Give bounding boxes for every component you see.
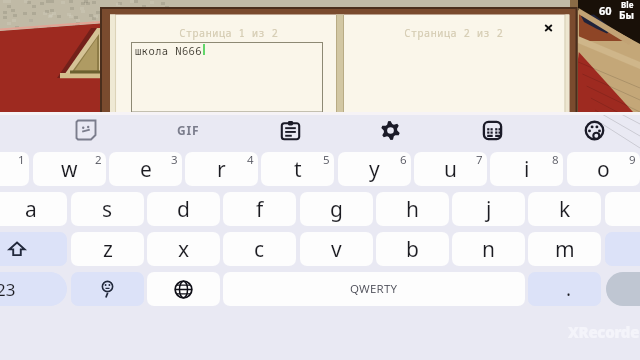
staticText: k [559,195,571,224]
button[interactable]: i [490,152,563,186]
staticText: s [102,195,113,224]
button[interactable]: u [414,152,487,186]
staticText: r [217,155,226,184]
staticText: a [25,195,37,224]
button[interactable]: z [71,232,144,266]
staticText: v [331,235,342,264]
staticText: d [177,195,190,224]
button[interactable]: o [567,152,640,186]
button[interactable]: Change language [147,272,220,306]
staticText: Бы [619,8,635,22]
button[interactable]: Enter [606,272,640,306]
staticText: XRecorder [568,322,640,342]
button[interactable]: t [261,152,334,186]
button[interactable]: j [452,192,525,226]
staticText: ?123 [0,278,16,301]
button[interactable]: x [147,232,220,266]
button[interactable]: h [376,192,449,226]
staticText: школа N666 [135,44,202,58]
staticText: 9 [629,152,636,168]
button[interactable]: Number pad [483,121,502,140]
staticText: h [406,195,419,224]
button[interactable]: Close book [541,21,556,35]
button[interactable]: Symbols [0,272,67,306]
button[interactable]: e [109,152,182,186]
staticText: 8 [552,152,559,168]
staticText: j [486,195,492,224]
button[interactable]: s [71,192,144,226]
staticText: c [254,235,265,264]
button[interactable]: Clipboard [281,121,300,140]
staticText: 5 [323,152,330,168]
staticText: y [369,155,380,184]
staticText: w [61,155,78,184]
button[interactable]: a [0,192,67,226]
button[interactable]: Stickers [76,120,96,140]
button[interactable]: y [338,152,411,186]
button[interactable]: q [0,152,29,186]
button[interactable]: v [300,232,373,266]
staticText: o [597,155,610,184]
button[interactable]: g [300,192,373,226]
staticText: z [103,235,113,264]
staticText: QWERTY [350,281,398,297]
button[interactable]: b [376,232,449,266]
button[interactable]: Theme [585,121,604,140]
staticText: f [256,195,264,224]
staticText: n [482,235,495,264]
staticText: GIF [177,122,200,138]
staticText: t [294,155,302,184]
button[interactable]: n [452,232,525,266]
button[interactable]: Shift [0,232,67,266]
button[interactable]: m [528,232,601,266]
staticText: . [566,276,572,302]
button[interactable]: QWERTY [223,272,525,306]
staticText: Ble [621,0,634,10]
button[interactable]: GIF [166,120,210,140]
button[interactable]: d [147,192,220,226]
button[interactable]: f [223,192,296,226]
button[interactable]: c [223,232,296,266]
staticText: e [140,155,152,184]
button[interactable]: Settings [381,121,400,140]
staticText: i [524,155,530,184]
staticText: 60 [599,3,612,18]
staticText: 1 [18,152,25,168]
button[interactable]: k [528,192,601,226]
button[interactable]: Emoji [71,272,144,306]
button[interactable]: Period [528,272,601,306]
staticText: 7 [476,152,483,168]
staticText: u [444,155,457,184]
staticText: 4 [247,152,254,168]
staticText: Страница 1 из 2 [179,26,278,40]
button[interactable]: w [33,152,106,186]
staticText: 2 [95,152,102,168]
staticText: b [406,235,419,264]
staticText: x [178,235,190,264]
staticText: g [330,195,343,224]
staticText: 3 [171,152,178,168]
staticText: Страница 2 из 2 [404,26,503,40]
button[interactable]: r [185,152,258,186]
staticText: m [555,235,575,264]
staticText: 6 [400,152,407,168]
